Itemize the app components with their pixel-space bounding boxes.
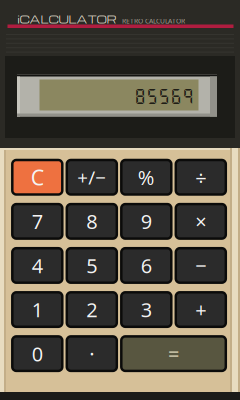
staticText: 4: [32, 252, 43, 279]
button[interactable]: 9: [121, 204, 171, 239]
button[interactable]: +: [176, 292, 226, 327]
button[interactable]: =: [121, 336, 226, 371]
staticText: 7: [32, 208, 43, 235]
staticText: +: [195, 296, 206, 323]
button[interactable]: ×: [176, 204, 226, 239]
staticText: 85569: [134, 86, 194, 106]
staticText: 5: [86, 252, 97, 279]
button[interactable]: 3: [121, 292, 171, 327]
staticText: ×: [195, 208, 206, 235]
button[interactable]: 5: [67, 248, 117, 283]
staticText: −: [195, 252, 206, 279]
staticText: 1: [32, 296, 43, 323]
staticText: 0: [32, 340, 43, 367]
staticText: ÷: [195, 164, 206, 191]
staticText: iCALCULATOR: [17, 12, 116, 26]
staticText: RETRO CALCULATOR: [122, 17, 185, 25]
button[interactable]: 0: [12, 336, 62, 371]
button[interactable]: 2: [67, 292, 117, 327]
button[interactable]: %: [121, 160, 171, 194]
staticText: =: [168, 340, 179, 367]
staticText: %: [138, 164, 155, 191]
button[interactable]: 7: [12, 204, 62, 239]
button[interactable]: −: [176, 248, 226, 283]
staticText: ·: [89, 340, 94, 367]
button[interactable]: 8: [67, 204, 117, 239]
button[interactable]: 1: [12, 292, 62, 327]
staticText: 9: [141, 208, 152, 235]
button[interactable]: ·: [67, 336, 117, 371]
button[interactable]: 6: [121, 248, 171, 283]
staticText: 8: [86, 208, 97, 235]
button[interactable]: ÷: [176, 160, 226, 194]
staticText: 6: [141, 252, 152, 279]
button[interactable]: +/−: [67, 160, 117, 194]
button[interactable]: 4: [12, 248, 62, 283]
staticText: C: [31, 163, 44, 191]
staticText: 2: [86, 296, 97, 323]
button[interactable]: C: [12, 160, 62, 194]
staticText: +/−: [77, 165, 106, 190]
staticText: 3: [141, 296, 152, 323]
